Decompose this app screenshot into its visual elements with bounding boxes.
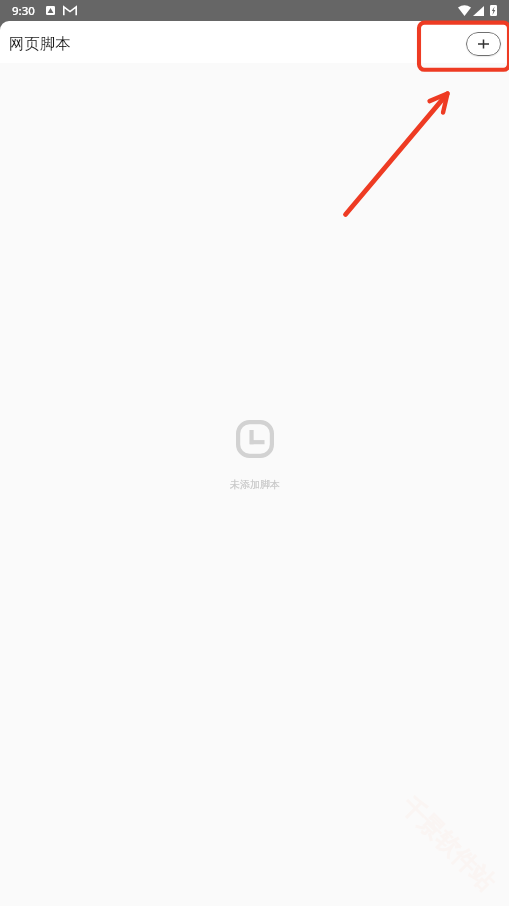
- staticText: 未添加脚本: [230, 478, 280, 491]
- staticText: 网页脚本: [9, 34, 71, 53]
- button[interactable]: Add script: [466, 32, 501, 56]
- staticText: 9:30: [12, 3, 35, 19]
